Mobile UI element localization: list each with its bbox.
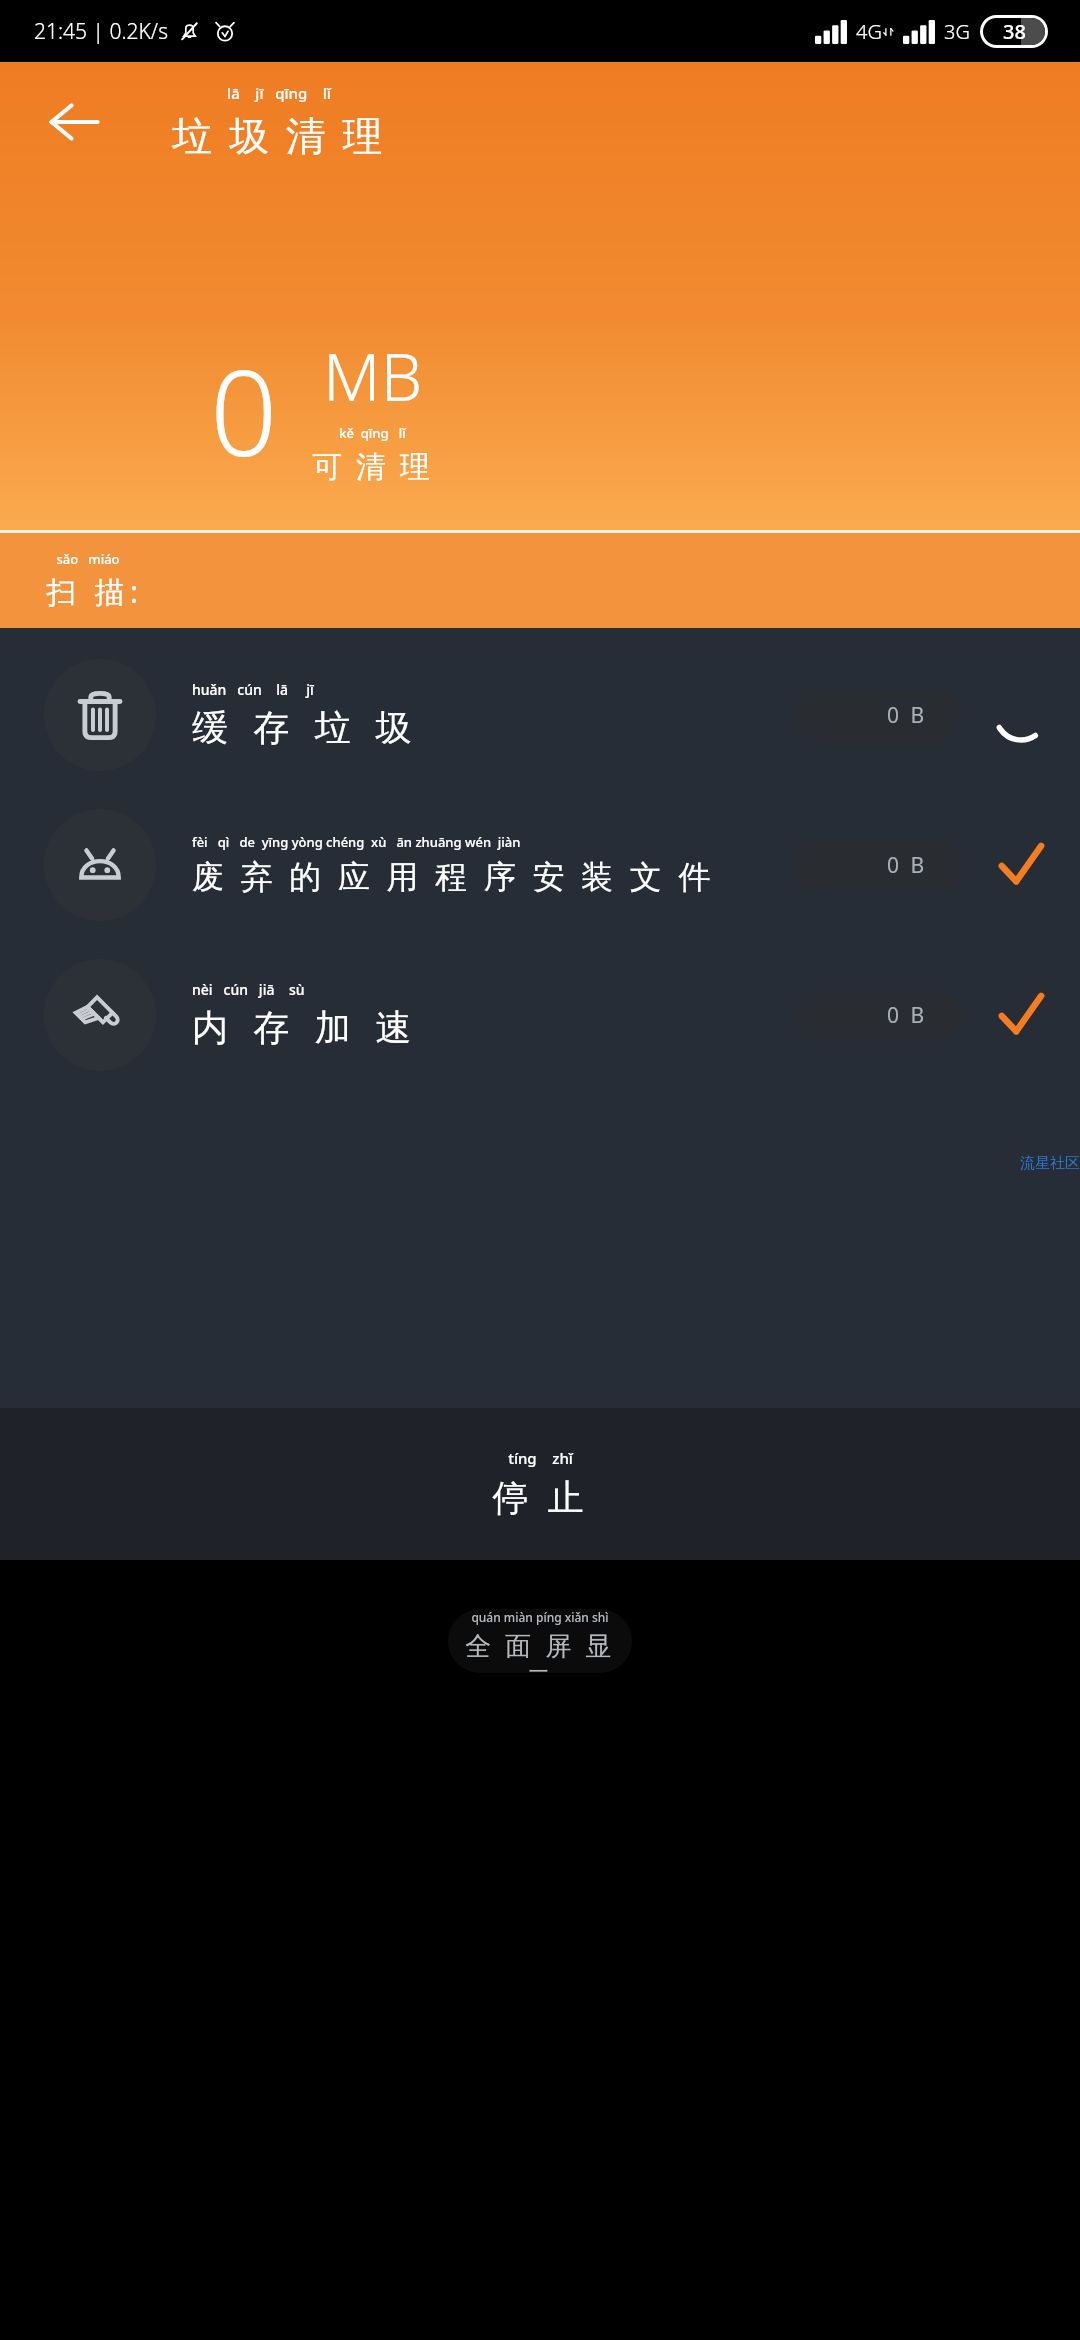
staticText: kě qīng lǐ	[339, 424, 406, 442]
staticText: 0 B	[887, 851, 928, 880]
staticText: 0 B	[887, 701, 928, 730]
staticText: 废 弃 的 应 用 程 序 安 装 文 件	[192, 854, 715, 898]
staticText: MB	[323, 330, 423, 420]
staticText: 4G	[856, 18, 882, 45]
staticText: fèi qì de yīng yòng chéng xù ān zhuāng w…	[192, 833, 521, 851]
staticText: 内 存 加 速	[192, 1002, 420, 1051]
staticText: nèi cún jiā sù	[192, 980, 305, 999]
staticText: 0	[210, 330, 278, 491]
staticText: 缓 存 垃 圾	[192, 702, 420, 751]
staticText: :	[130, 571, 139, 612]
other: 废弃的应用程序安装文件 done	[990, 834, 1052, 896]
staticText: tíng zhǐ	[508, 1448, 573, 1468]
staticText: 38	[1003, 18, 1026, 45]
staticText: 扫 描	[46, 571, 130, 612]
button[interactable]: huǎn cún lā jī	[0, 640, 1080, 790]
other: 内存加速 done	[990, 984, 1052, 1046]
staticText: 21:45 | 0.2K/s	[34, 17, 168, 46]
button[interactable]: tíng zhǐ	[0, 1408, 1080, 1560]
staticText: 停 止	[492, 1472, 589, 1521]
staticText: huǎn cún lā jī	[192, 680, 314, 699]
staticText: 0 B	[887, 1001, 928, 1030]
staticText: 流星社区	[1020, 1154, 1080, 1173]
staticText: sǎo miáo	[56, 550, 120, 568]
button[interactable]: fèi qì de yīng yòng chéng xù ān zhuāng w…	[0, 790, 1080, 940]
staticText: 可 清 理	[312, 445, 433, 486]
staticText: 3G	[944, 18, 970, 45]
button[interactable]: nèi cún jiā sù	[0, 940, 1080, 1090]
other: Scanning 缓存垃圾	[990, 684, 1052, 746]
button[interactable]: quán miàn píng xiǎn shì	[448, 1609, 632, 1673]
staticText: quán miàn píng xiǎn shì	[471, 1609, 609, 1625]
staticText: 全 面 屏 显 示	[448, 1627, 632, 1673]
staticText: 垃 圾 清 理	[172, 107, 386, 162]
button[interactable]: Back	[32, 80, 116, 164]
staticText: lā jī qīng lǐ	[227, 83, 331, 103]
